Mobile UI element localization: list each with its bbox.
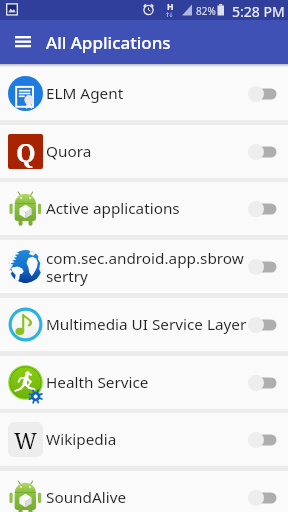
staticText: com.sec.android.app.sbrowsertry xyxy=(46,248,247,286)
button[interactable]: com.sec.android.app.sbrowsertry xyxy=(0,240,288,293)
button[interactable]: Q xyxy=(0,125,288,178)
button[interactable]: Navigation menu xyxy=(0,20,46,64)
staticText: 5:28 PM xyxy=(232,2,285,21)
staticText: H xyxy=(167,1,174,13)
button[interactable]: Toggle application xyxy=(248,430,277,450)
button[interactable]: Toggle application xyxy=(248,488,277,508)
staticText: 82% xyxy=(196,4,216,18)
button[interactable]: Toggle application xyxy=(248,315,277,335)
button[interactable]: Toggle application xyxy=(248,142,277,162)
button[interactable]: Toggle application xyxy=(248,199,277,219)
staticText: Multimedia UI Service Layer xyxy=(46,314,247,335)
button[interactable]: Toggle application xyxy=(248,257,277,277)
staticText: Q xyxy=(16,135,36,169)
staticText: All Applications xyxy=(46,31,171,54)
staticText: Health Service xyxy=(46,372,149,393)
staticText: Wikipedia xyxy=(46,429,117,450)
button[interactable]: Multimedia UI Service Layer xyxy=(0,298,288,351)
button[interactable]: ELM Agent xyxy=(0,67,288,120)
button[interactable]: Toggle application xyxy=(248,84,277,104)
button[interactable]: Active applications xyxy=(0,182,288,235)
staticText: ELM Agent xyxy=(46,83,124,104)
button[interactable]: Toggle application xyxy=(248,373,277,393)
button[interactable]: W xyxy=(0,413,288,466)
button[interactable]: Health Service xyxy=(0,356,288,409)
staticText: W xyxy=(14,425,38,455)
staticText: SoundAlive xyxy=(46,487,127,508)
staticText: Active applications xyxy=(46,198,180,219)
button[interactable]: SoundAlive xyxy=(0,471,288,512)
staticText: Quora xyxy=(46,141,92,162)
